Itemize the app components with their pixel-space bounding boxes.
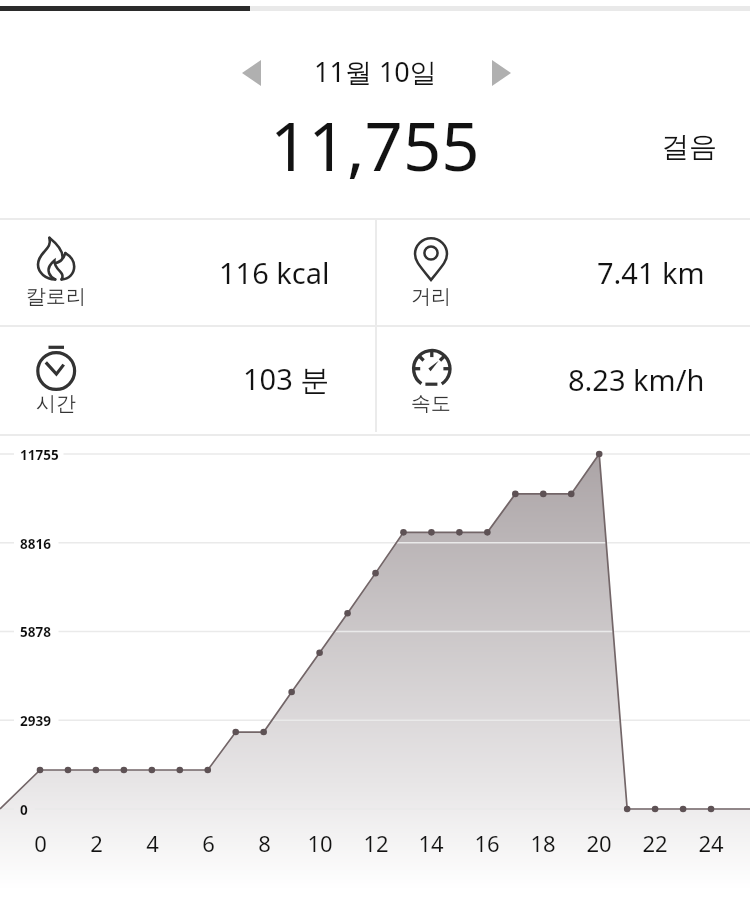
staticText: 걸음: [661, 129, 717, 164]
staticText: 0: [20, 801, 28, 819]
staticText: 116 kcal: [219, 253, 330, 292]
staticText: 속도: [411, 391, 451, 416]
staticText: 20: [586, 828, 612, 858]
staticText: 2939: [20, 712, 51, 730]
button[interactable]: Previous day: [234, 53, 268, 93]
staticText: 11,755: [270, 99, 480, 179]
staticText: 8: [258, 828, 271, 858]
staticText: 11755: [20, 446, 59, 464]
staticText: 거리: [411, 284, 451, 309]
staticText: 16: [474, 828, 500, 858]
staticText: 8816: [20, 535, 51, 553]
staticText: 10: [307, 828, 333, 858]
button[interactable]: 거리: [375, 218, 750, 326]
staticText: 11월 10일: [314, 53, 437, 90]
staticText: 18: [530, 828, 556, 858]
staticText: 시간: [36, 391, 76, 416]
button[interactable]: Page 3: [500, 0, 750, 16]
button[interactable]: 속도: [375, 325, 750, 433]
button[interactable]: Page 1: [0, 0, 250, 16]
staticText: 8.23 km/h: [568, 360, 705, 399]
staticText: 24: [698, 828, 724, 858]
button[interactable]: 시간: [0, 325, 375, 433]
staticText: 칼로리: [26, 284, 86, 309]
button[interactable]: Next day: [484, 53, 518, 93]
staticText: 6: [202, 828, 215, 858]
staticText: 12: [363, 828, 389, 858]
button[interactable]: 칼로리: [0, 218, 375, 326]
staticText: 14: [418, 828, 444, 858]
button[interactable]: Page 2: [250, 0, 500, 16]
staticText: 2: [90, 828, 103, 858]
staticText: 0: [34, 828, 47, 858]
staticText: 5878: [20, 623, 51, 641]
staticText: 7.41 km: [597, 253, 705, 292]
staticText: 103 분: [243, 359, 330, 399]
staticText: 4: [146, 828, 159, 858]
staticText: 22: [642, 828, 668, 858]
